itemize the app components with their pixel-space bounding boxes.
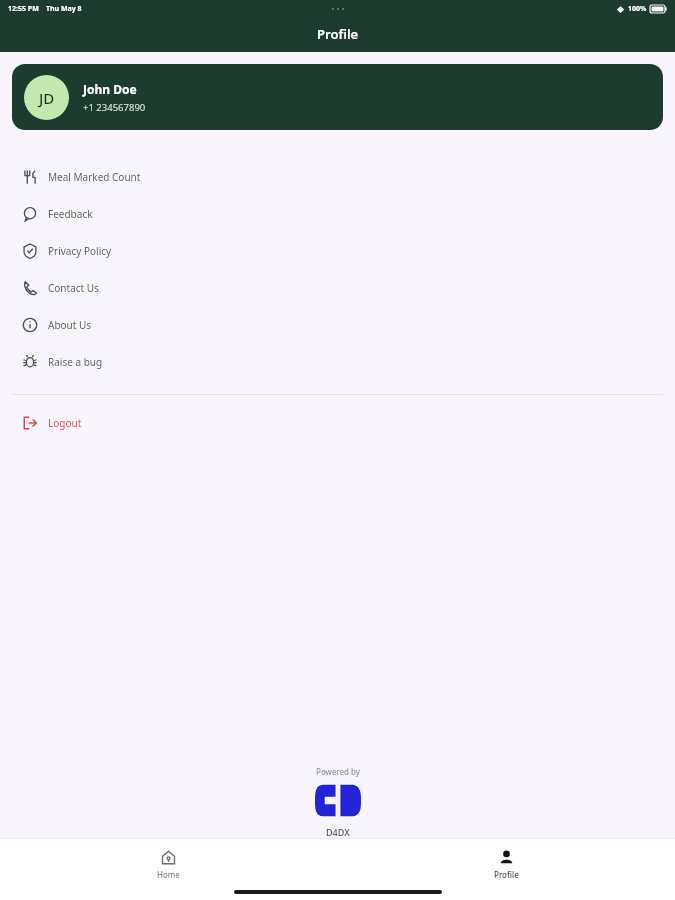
staticText: D4DX <box>326 826 350 838</box>
button[interactable]: Logout <box>0 406 675 440</box>
button[interactable]: Raise a bug <box>0 343 675 380</box>
staticText: John Doe <box>83 81 137 97</box>
staticText: Logout <box>48 416 82 430</box>
button[interactable]: Feedback <box>0 195 675 232</box>
button[interactable]: Privacy Policy <box>0 232 675 269</box>
staticText: Privacy Policy <box>48 244 112 258</box>
staticText: Home <box>157 869 180 880</box>
staticText: Powered by <box>316 766 360 777</box>
staticText: Contact Us <box>48 281 99 295</box>
staticText: Feedback <box>48 207 93 221</box>
staticText: 12:55 PM <box>8 4 39 14</box>
staticText: About Us <box>48 318 92 332</box>
button[interactable]: JD <box>12 64 663 130</box>
button[interactable]: About Us <box>0 306 675 343</box>
staticText: Profile <box>494 869 519 880</box>
staticText: Thu May 8 <box>46 4 82 14</box>
button[interactable]: Contact Us <box>0 269 675 306</box>
staticText: JD <box>39 88 55 108</box>
staticText: Raise a bug <box>48 355 103 369</box>
staticText: 100% <box>628 4 647 14</box>
staticText: Meal Marked Count <box>48 170 141 184</box>
button[interactable]: Profile <box>337 839 675 900</box>
button[interactable]: Home <box>0 839 337 900</box>
staticText: Profile <box>317 25 359 43</box>
button[interactable]: Meal Marked Count <box>0 158 675 195</box>
staticText: +1 234567890 <box>83 101 146 114</box>
